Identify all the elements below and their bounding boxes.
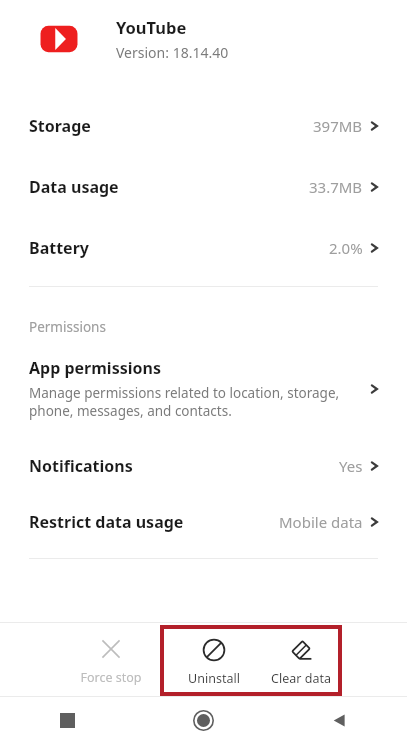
staticText: Storage <box>29 115 91 137</box>
button[interactable]: Force stop <box>68 626 154 694</box>
button[interactable]: Back <box>271 697 407 743</box>
staticText: Data usage <box>29 176 119 198</box>
staticText: Version: 18.14.40 <box>116 43 229 62</box>
button[interactable]: Data usage <box>0 156 407 217</box>
other: Force stop <box>68 626 154 694</box>
staticText: 397MB <box>313 116 363 136</box>
button[interactable]: Notifications <box>0 438 407 493</box>
button[interactable]: Recents <box>0 697 135 743</box>
staticText: Clear data <box>271 670 331 686</box>
staticText: Manage permissions related to location, … <box>29 384 340 420</box>
button[interactable]: Uninstall updates <box>164 627 264 694</box>
staticText: Permissions <box>29 318 106 336</box>
staticText: Uninstall updates <box>164 670 264 686</box>
staticText: Mobile data <box>279 512 363 532</box>
staticText: YouTube <box>116 16 187 38</box>
button[interactable]: Clear data <box>264 627 338 694</box>
staticText: Yes <box>339 456 363 476</box>
staticText: Force stop <box>80 669 142 686</box>
button[interactable]: YouTube <box>0 0 407 78</box>
staticText: Battery <box>29 237 89 259</box>
staticText: 2.0% <box>329 238 363 258</box>
staticText: App permissions <box>29 357 161 379</box>
button[interactable]: Storage <box>0 95 407 156</box>
staticText: Restrict data usage <box>29 511 184 533</box>
button[interactable]: App permissions <box>0 355 407 426</box>
button[interactable]: Home <box>135 697 271 743</box>
button[interactable]: Battery <box>0 217 407 278</box>
button[interactable]: Restrict data usage <box>0 493 407 551</box>
staticText: 33.7MB <box>309 177 363 197</box>
staticText: Notifications <box>29 455 133 477</box>
